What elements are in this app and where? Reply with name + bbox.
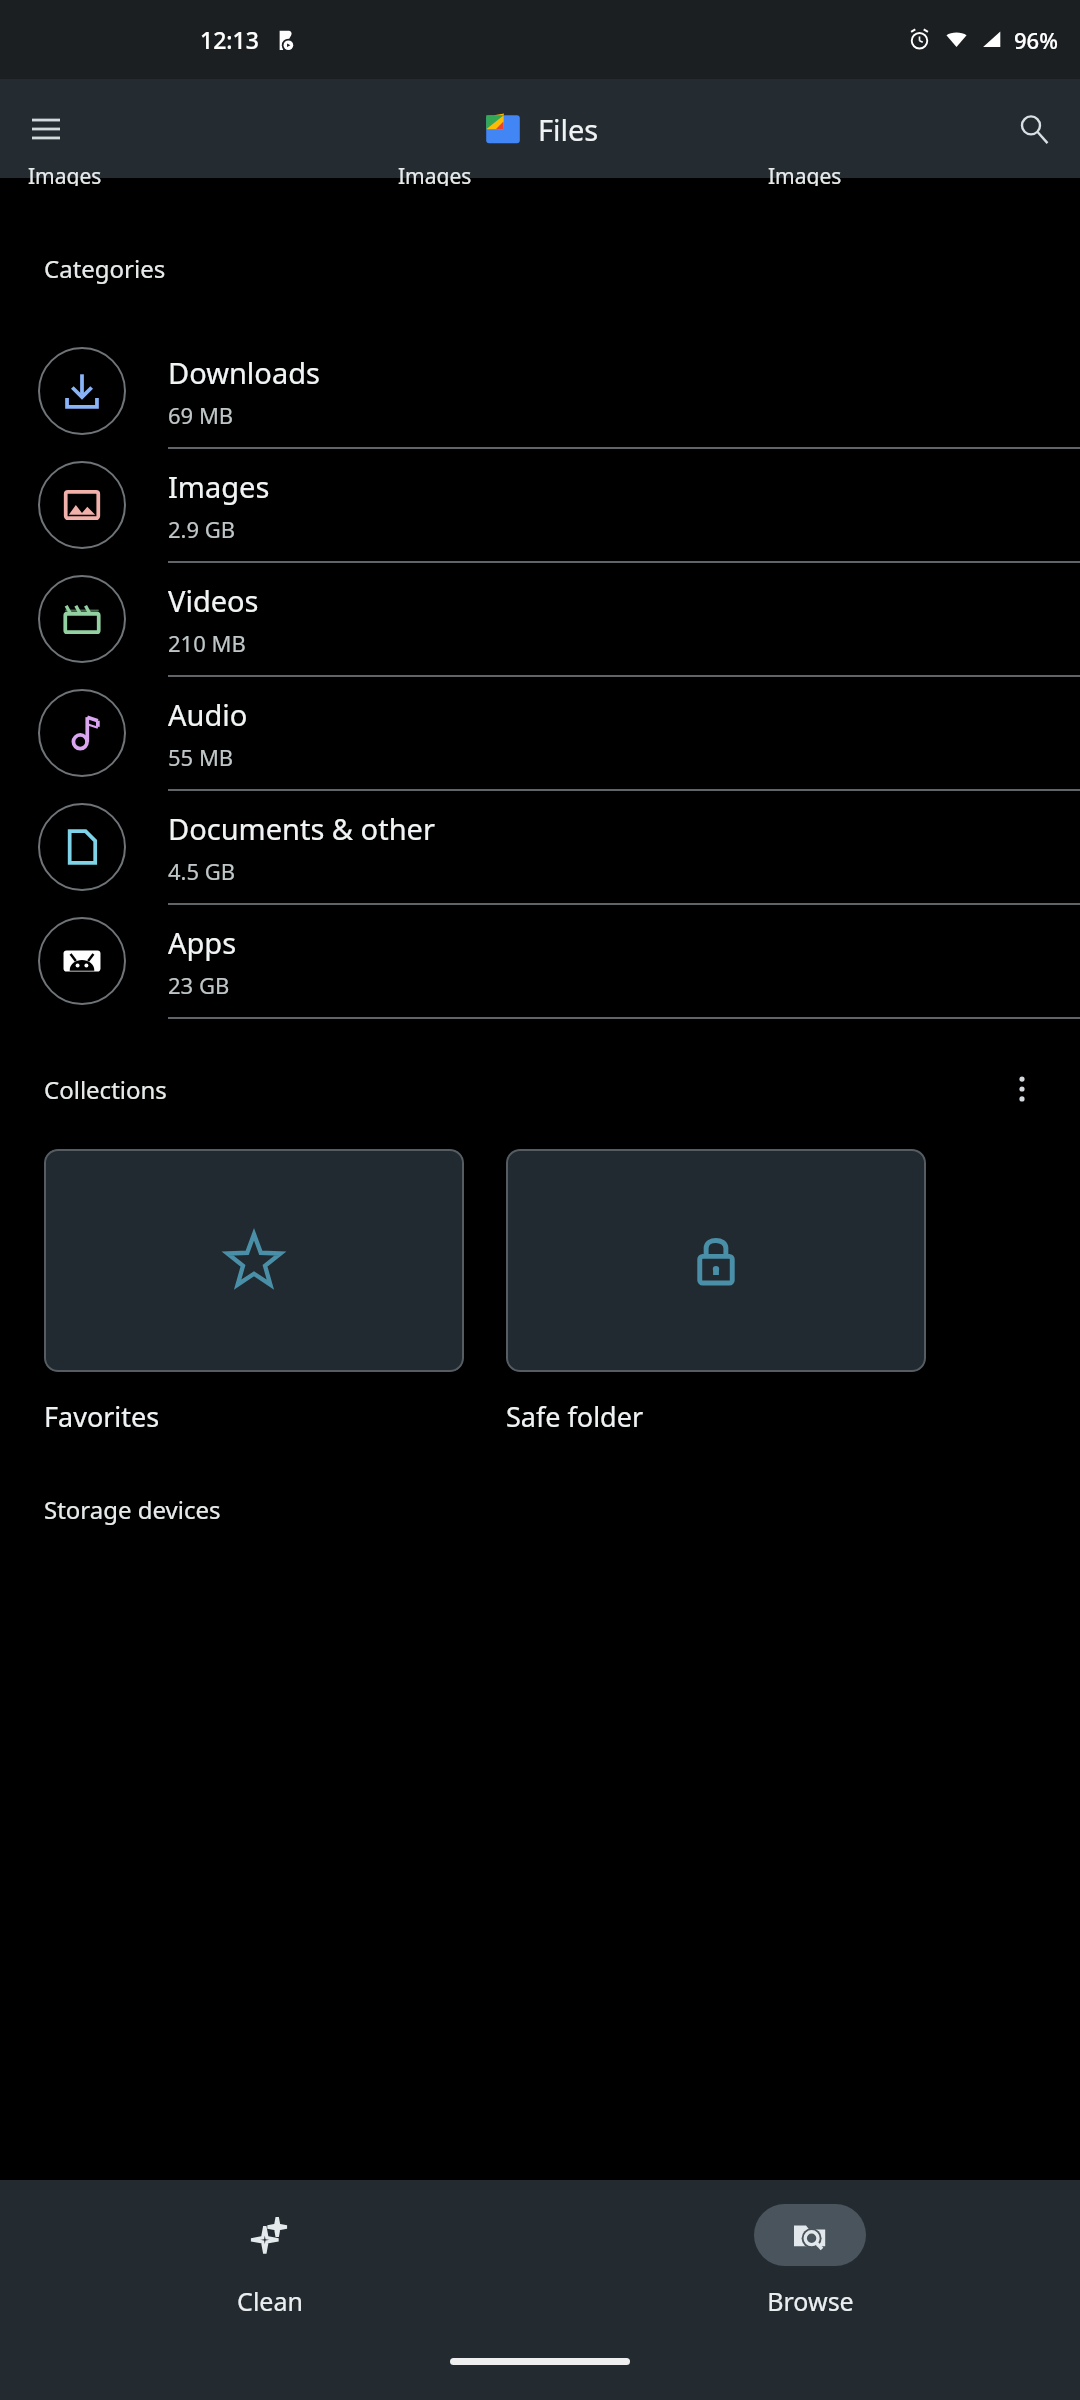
staticText: Favorites bbox=[44, 1398, 160, 1435]
staticText: 12:13 bbox=[200, 24, 259, 55]
button[interactable]: Audio bbox=[0, 677, 1080, 791]
button[interactable]: Apps bbox=[0, 905, 1080, 1019]
button[interactable]: Search bbox=[1006, 101, 1062, 157]
staticText: Images bbox=[28, 162, 102, 186]
button[interactable]: More options bbox=[994, 1061, 1050, 1117]
staticText: 4.5 GB bbox=[168, 856, 236, 886]
button[interactable]: Safe folder bbox=[506, 1149, 926, 1435]
staticText: Categories bbox=[44, 252, 166, 285]
button[interactable]: Favorites bbox=[44, 1149, 464, 1435]
button[interactable]: Documents & other bbox=[0, 791, 1080, 905]
staticText: Clean bbox=[237, 2284, 303, 2318]
staticText: Apps bbox=[168, 923, 237, 962]
staticText: Safe folder bbox=[506, 1398, 644, 1435]
staticText: Collections bbox=[44, 1073, 167, 1106]
staticText: Images bbox=[168, 467, 270, 506]
staticText: 210 MB bbox=[168, 628, 246, 658]
staticText: Audio bbox=[168, 695, 248, 734]
staticText: 69 MB bbox=[168, 400, 234, 430]
staticText: Browse bbox=[767, 2284, 854, 2318]
staticText: 55 MB bbox=[168, 742, 234, 772]
staticText: Images bbox=[768, 162, 842, 186]
button[interactable]: Downloads bbox=[0, 335, 1080, 449]
button[interactable]: Browse bbox=[540, 2180, 1080, 2358]
staticText: Files bbox=[538, 110, 599, 149]
staticText: 96% bbox=[1014, 25, 1058, 55]
staticText: Videos bbox=[168, 581, 259, 620]
staticText: 2.9 GB bbox=[168, 514, 236, 544]
button[interactable]: Videos bbox=[0, 563, 1080, 677]
staticText: Downloads bbox=[168, 353, 320, 392]
button[interactable]: Menu bbox=[18, 101, 74, 157]
button[interactable]: Clean bbox=[0, 2180, 540, 2358]
staticText: Documents & other bbox=[168, 809, 435, 848]
button[interactable]: Images bbox=[0, 449, 1080, 563]
staticText: Images bbox=[398, 162, 472, 186]
staticText: 23 GB bbox=[168, 970, 230, 1000]
staticText: Storage devices bbox=[44, 1493, 221, 1526]
